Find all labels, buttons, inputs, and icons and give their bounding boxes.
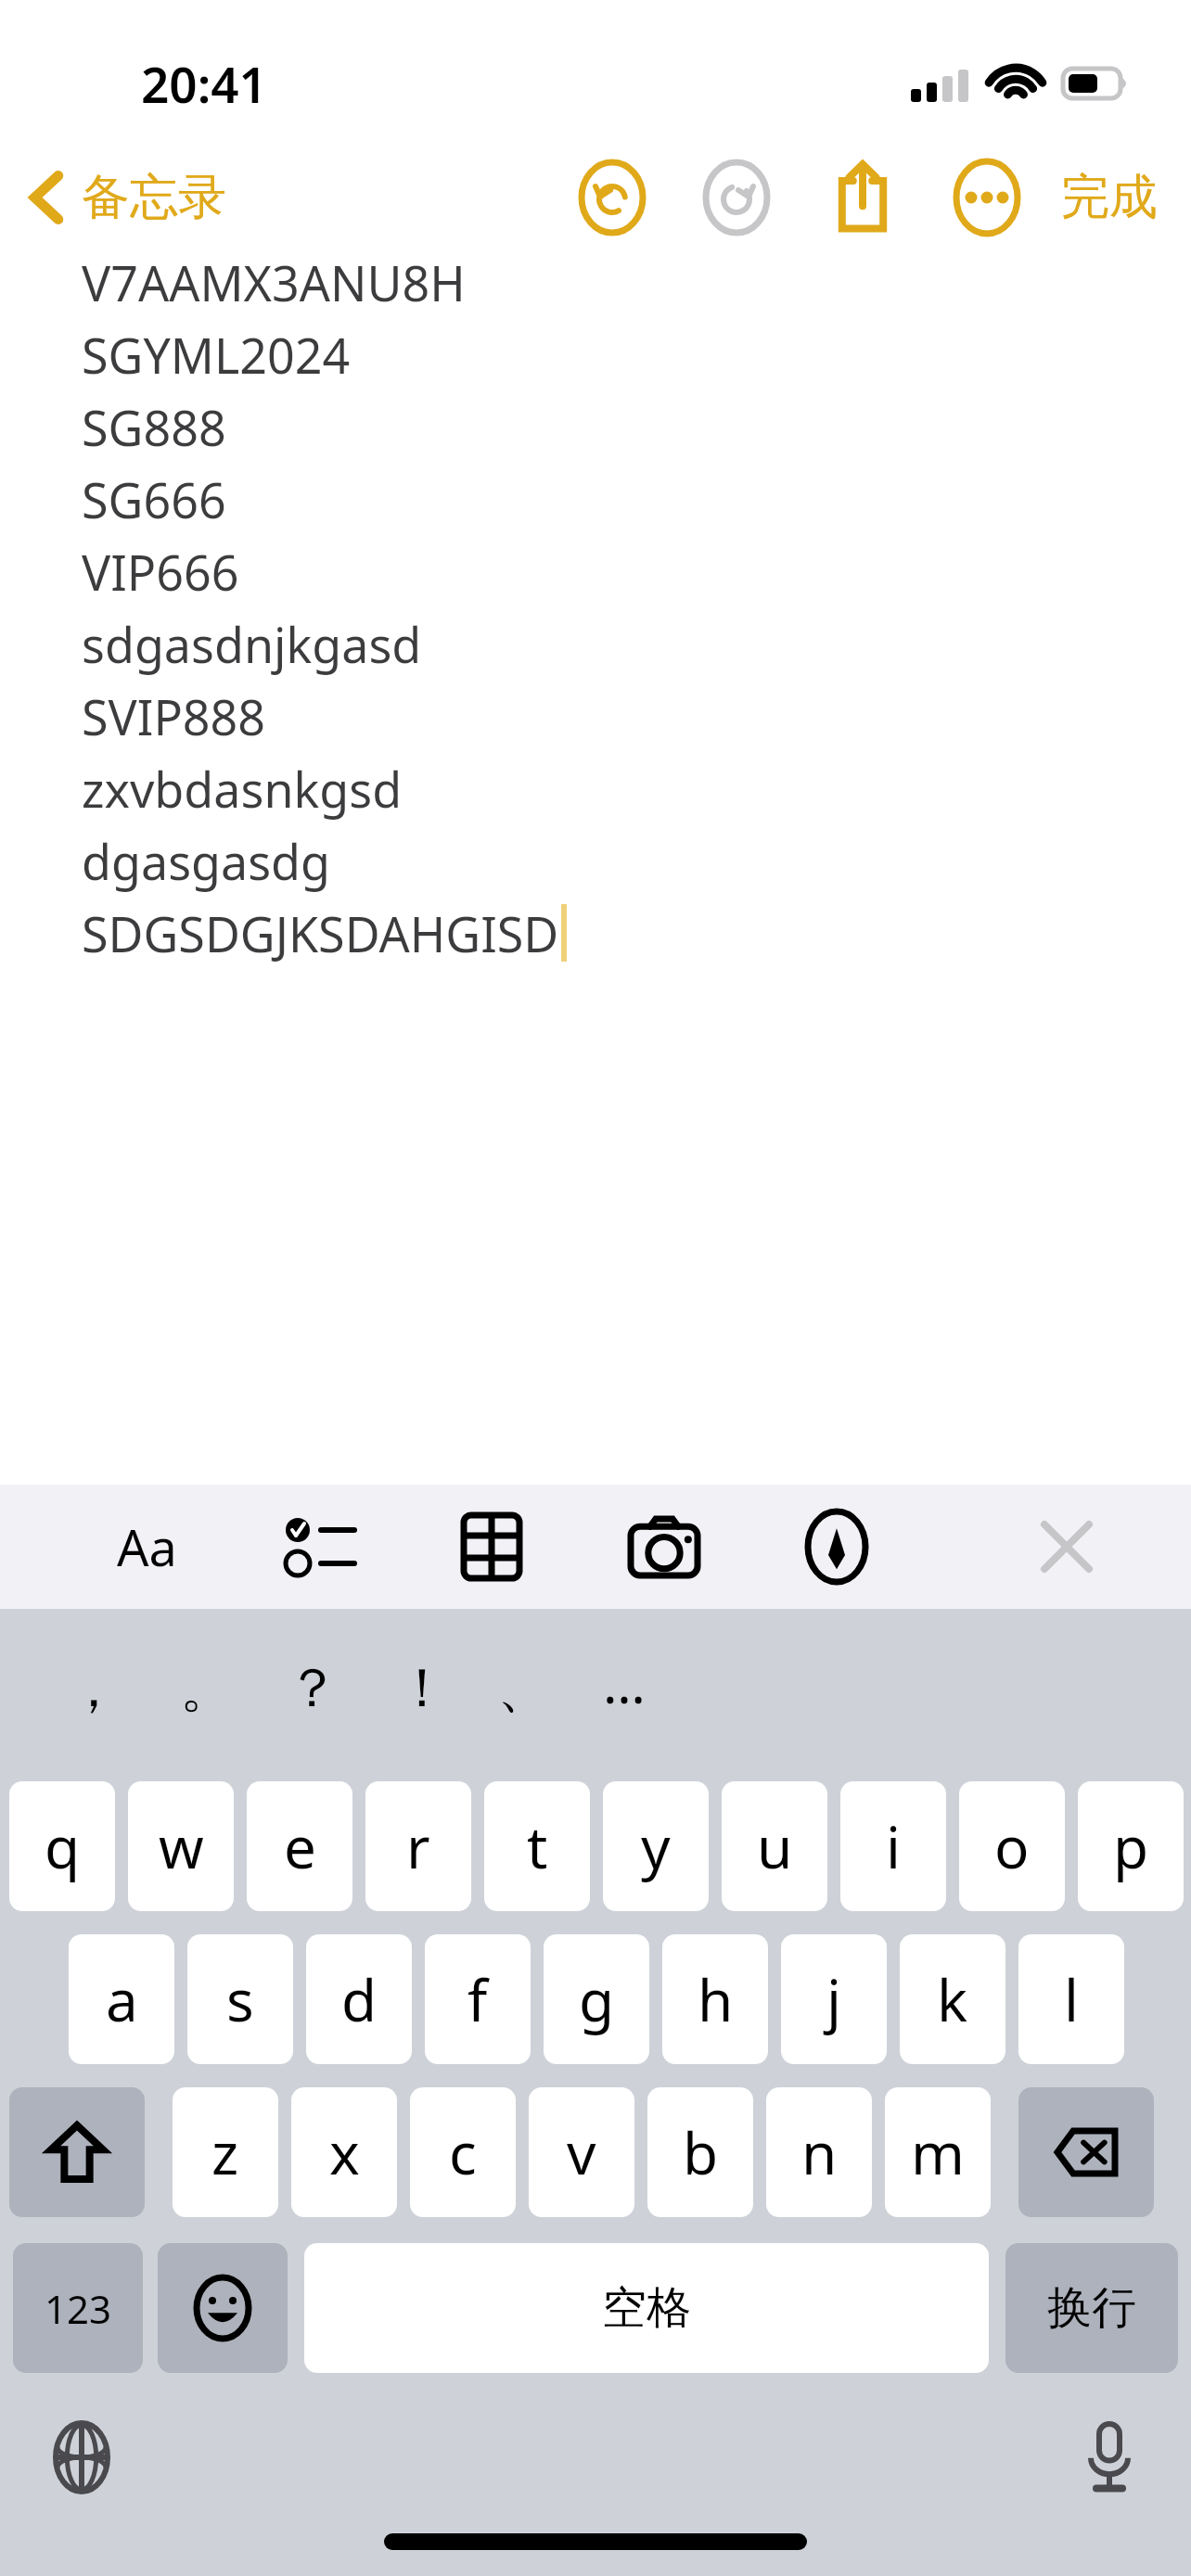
button[interactable]: Close [1022,1502,1111,1591]
staticText: q [45,1807,81,1885]
staticText: …… [603,1646,686,1729]
staticText: dgasgasdg [82,828,331,894]
button[interactable]: …… [603,1646,686,1729]
button[interactable]: ！ [380,1646,464,1729]
staticText: 完成 [1061,167,1158,228]
button[interactable]: 。 [165,1646,249,1729]
staticText: SVIP888 [82,683,266,749]
staticText: v [567,2113,596,2191]
staticText: ， [67,1654,121,1722]
staticText: SG888 [82,394,226,460]
button[interactable]: p [1078,1781,1184,1911]
button[interactable]: u [722,1781,827,1911]
staticText: d [341,1960,378,2038]
staticText: r [406,1807,430,1885]
button[interactable]: More [942,153,1031,241]
button[interactable]: Table [447,1502,536,1591]
button[interactable]: l [1018,1934,1124,2064]
button[interactable]: Camera [620,1502,709,1591]
staticText: 空格 [602,2280,691,2336]
button[interactable]: Checklist [275,1502,364,1591]
button[interactable]: n [766,2087,872,2217]
staticText: y [641,1807,671,1885]
button[interactable]: Emoji [158,2243,288,2373]
staticText: m [911,2113,965,2191]
staticText: l [1064,1960,1079,2038]
button[interactable]: v [529,2087,634,2217]
staticText: zxvbdasnkgsd [82,756,403,822]
button[interactable]: e [247,1781,352,1911]
button[interactable]: Switch keyboard [30,2405,134,2509]
button[interactable]: Dictation [1057,2405,1161,2509]
button[interactable]: 空格 [304,2243,989,2373]
button[interactable]: b [647,2087,753,2217]
staticText: k [937,1960,968,2038]
staticText: o [994,1807,1030,1885]
button[interactable]: 换行 [1005,2243,1178,2373]
button[interactable]: q [9,1781,115,1911]
staticText: z [211,2113,239,2191]
staticText: ？ [286,1654,339,1722]
button[interactable]: 完成 [1056,158,1163,237]
button[interactable]: ？ [271,1646,354,1729]
staticText: h [698,1960,734,2038]
button[interactable]: d [306,1934,412,2064]
button[interactable]: o [959,1781,1065,1911]
staticText: ！ [395,1654,449,1722]
staticText: SGYML2024 [82,322,351,388]
button[interactable]: s [187,1934,293,2064]
button[interactable]: i [840,1781,946,1911]
button[interactable]: r [365,1781,471,1911]
button[interactable]: Shift [9,2087,145,2217]
staticText: SG666 [82,466,226,532]
staticText: V7AAMX3ANU8H [82,249,466,315]
button[interactable]: h [662,1934,768,2064]
staticText: 备忘录 [82,167,226,228]
staticText: s [226,1960,254,2038]
button[interactable]: j [781,1934,887,2064]
button[interactable]: y [603,1781,709,1911]
button[interactable]: Text format [102,1502,191,1591]
button[interactable]: t [484,1781,590,1911]
button[interactable]: x [291,2087,397,2217]
button[interactable]: Markup [792,1502,881,1591]
button[interactable]: k [900,1934,1005,2064]
button[interactable]: w [128,1781,234,1911]
staticText: c [449,2113,477,2191]
button[interactable]: 备忘录 [28,167,226,228]
staticText: 。 [180,1654,234,1722]
button[interactable]: a [69,1934,174,2064]
button[interactable]: Share [818,153,907,241]
staticText: n [801,2113,838,2191]
staticText: SDGSDGJKSDAHGISD [82,900,559,966]
button[interactable]: f [425,1934,531,2064]
staticText: u [757,1807,793,1885]
button[interactable]: 、 [482,1646,566,1729]
button[interactable]: ， [52,1646,135,1729]
button[interactable]: g [544,1934,649,2064]
staticText: x [329,2113,360,2191]
staticText: VIP666 [82,539,239,605]
staticText: p [1113,1807,1149,1885]
staticText: f [467,1960,488,2038]
button[interactable]: m [885,2087,991,2217]
button[interactable]: c [410,2087,516,2217]
staticText: 换行 [1047,2280,1136,2336]
staticText: sdgasdnjkgasd [82,611,422,677]
staticText: t [527,1807,548,1885]
button[interactable]: Backspace [1018,2087,1154,2217]
staticText: w [159,1807,204,1885]
staticText: b [683,2113,719,2191]
button[interactable]: z [173,2087,278,2217]
staticText: 、 [497,1654,551,1722]
staticText: 123 [45,2282,112,2335]
staticText: e [284,1807,316,1885]
button[interactable]: Undo [568,153,657,241]
staticText: j [826,1960,841,2038]
staticText: Aa [117,1512,177,1581]
button[interactable]: 123 [13,2243,143,2373]
staticText: i [886,1807,901,1885]
staticText: 20:41 [141,50,267,117]
staticText: a [106,1960,138,2038]
button[interactable]: Redo [692,153,781,241]
